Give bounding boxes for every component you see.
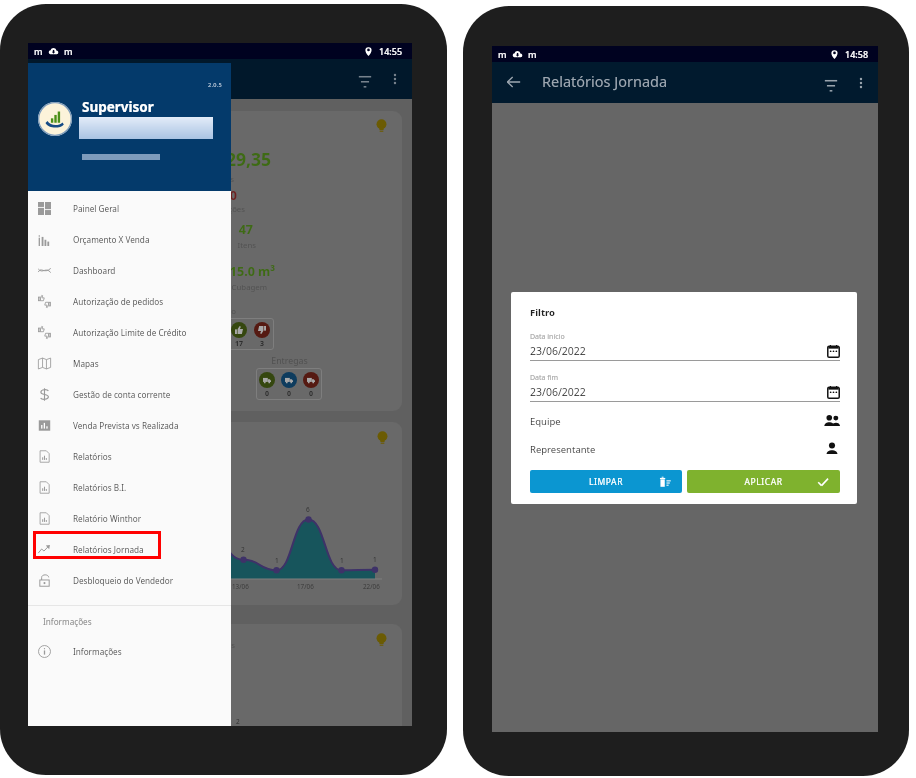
staticText: Relatórios Jornada xyxy=(542,71,668,91)
staticText: 47 xyxy=(37,221,253,238)
staticText: 17 xyxy=(235,339,244,349)
staticText: Data início xyxy=(530,332,565,342)
staticText: 2 xyxy=(241,545,245,554)
staticText: 1 xyxy=(275,556,279,565)
staticText: Cubagem xyxy=(37,282,267,293)
staticText: Vendas xyxy=(37,174,234,185)
staticText: Filtro xyxy=(530,306,556,319)
button[interactable]: Relatórios xyxy=(28,441,231,472)
button[interactable]: Orçamento X Venda xyxy=(28,224,231,255)
staticText: Venda Prevista vs Realizada xyxy=(73,420,179,431)
staticText: APLICAR xyxy=(687,476,840,488)
staticText: Clientes xyxy=(37,640,235,651)
staticText: Autorização de pedidos xyxy=(73,296,164,307)
staticText: 3 xyxy=(260,339,265,349)
staticText: 15.0 m³ xyxy=(37,263,275,280)
button[interactable]: LIMPAR xyxy=(530,470,682,493)
staticText: m xyxy=(528,48,537,60)
staticText: 0 xyxy=(265,389,270,399)
staticText: 6 xyxy=(306,505,310,514)
button[interactable]: Gestão de conta corrente xyxy=(28,379,231,410)
staticText: R$ 48.729,35 xyxy=(37,147,271,171)
button[interactable]: Filter xyxy=(817,71,845,99)
staticText: Mapas xyxy=(73,358,99,369)
button[interactable]: Filter xyxy=(351,67,379,95)
button[interactable]: Relatório Winthor xyxy=(28,503,231,534)
staticText: 1 xyxy=(340,556,344,565)
staticText: Autorização Limite de Crédito xyxy=(73,327,187,338)
button[interactable]: Desbloqueio do Vendedor xyxy=(28,565,231,596)
button[interactable]: Autorização Limite de Crédito xyxy=(28,317,231,348)
staticText: Representante xyxy=(530,443,596,456)
staticText: Orçamento X Venda xyxy=(73,234,150,245)
staticText: Relatórios B.I. xyxy=(73,482,127,493)
staticText: Positivação xyxy=(37,306,236,317)
button[interactable]: Pick date xyxy=(827,386,840,399)
staticText: Dashboard xyxy=(73,265,116,276)
staticText: Relatório Winthor xyxy=(73,513,142,524)
button[interactable]: Dashboard xyxy=(28,255,231,286)
staticText: 23/06/2022 xyxy=(530,344,586,358)
staticText: Data fim xyxy=(530,373,559,383)
staticText: 13/06 xyxy=(232,582,249,591)
staticText: 14:58 xyxy=(845,48,869,60)
button[interactable]: Relatórios Jornada xyxy=(28,534,231,565)
staticText: 2 xyxy=(236,717,240,726)
staticText: 23/06/2022 xyxy=(530,385,586,399)
staticText: Relatórios Jornada xyxy=(73,544,144,555)
staticText: Devoluções xyxy=(37,204,245,215)
button[interactable]: Back xyxy=(503,71,525,93)
button[interactable]: More options xyxy=(384,68,406,90)
button[interactable]: Equipe xyxy=(530,413,840,429)
staticText: Relatórios xyxy=(73,451,112,462)
staticText: m xyxy=(34,45,43,57)
button[interactable]: Representante xyxy=(530,441,840,457)
staticText: Informações xyxy=(43,616,92,627)
staticText: m xyxy=(498,48,507,60)
staticText: Gestão de conta corrente xyxy=(73,389,171,400)
button[interactable]: Venda Prevista vs Realizada xyxy=(28,410,231,441)
staticText: 0 xyxy=(309,389,314,399)
button[interactable]: More options xyxy=(850,72,872,94)
staticText: Painel Geral xyxy=(73,203,120,214)
button[interactable]: Painel Geral xyxy=(28,193,231,224)
staticText: 22/06 xyxy=(363,582,380,591)
staticText: Desbloqueio do Vendedor xyxy=(73,575,174,586)
button[interactable]: Informações xyxy=(28,636,231,667)
staticText: Informações xyxy=(73,646,122,657)
staticText: m xyxy=(64,45,73,57)
button[interactable]: Mapas xyxy=(28,348,231,379)
staticText: 1 xyxy=(373,555,377,564)
staticText: 0 xyxy=(287,389,292,399)
staticText: LIMPAR xyxy=(530,476,682,488)
staticText: 0 xyxy=(37,187,237,204)
button[interactable]: Relatórios B.I. xyxy=(28,472,231,503)
staticText: Itens xyxy=(37,240,256,251)
staticText: Supervisor xyxy=(82,98,154,116)
staticText: 14:55 xyxy=(379,45,403,57)
staticText: Equipe xyxy=(530,415,561,428)
button[interactable]: Pick date xyxy=(827,345,840,358)
button[interactable]: Autorização de pedidos xyxy=(28,286,231,317)
staticText: Entregas xyxy=(242,355,337,367)
button[interactable]: APLICAR xyxy=(687,470,840,493)
staticText: 17/06 xyxy=(297,582,314,591)
staticText: 2.0.5 xyxy=(208,81,223,89)
